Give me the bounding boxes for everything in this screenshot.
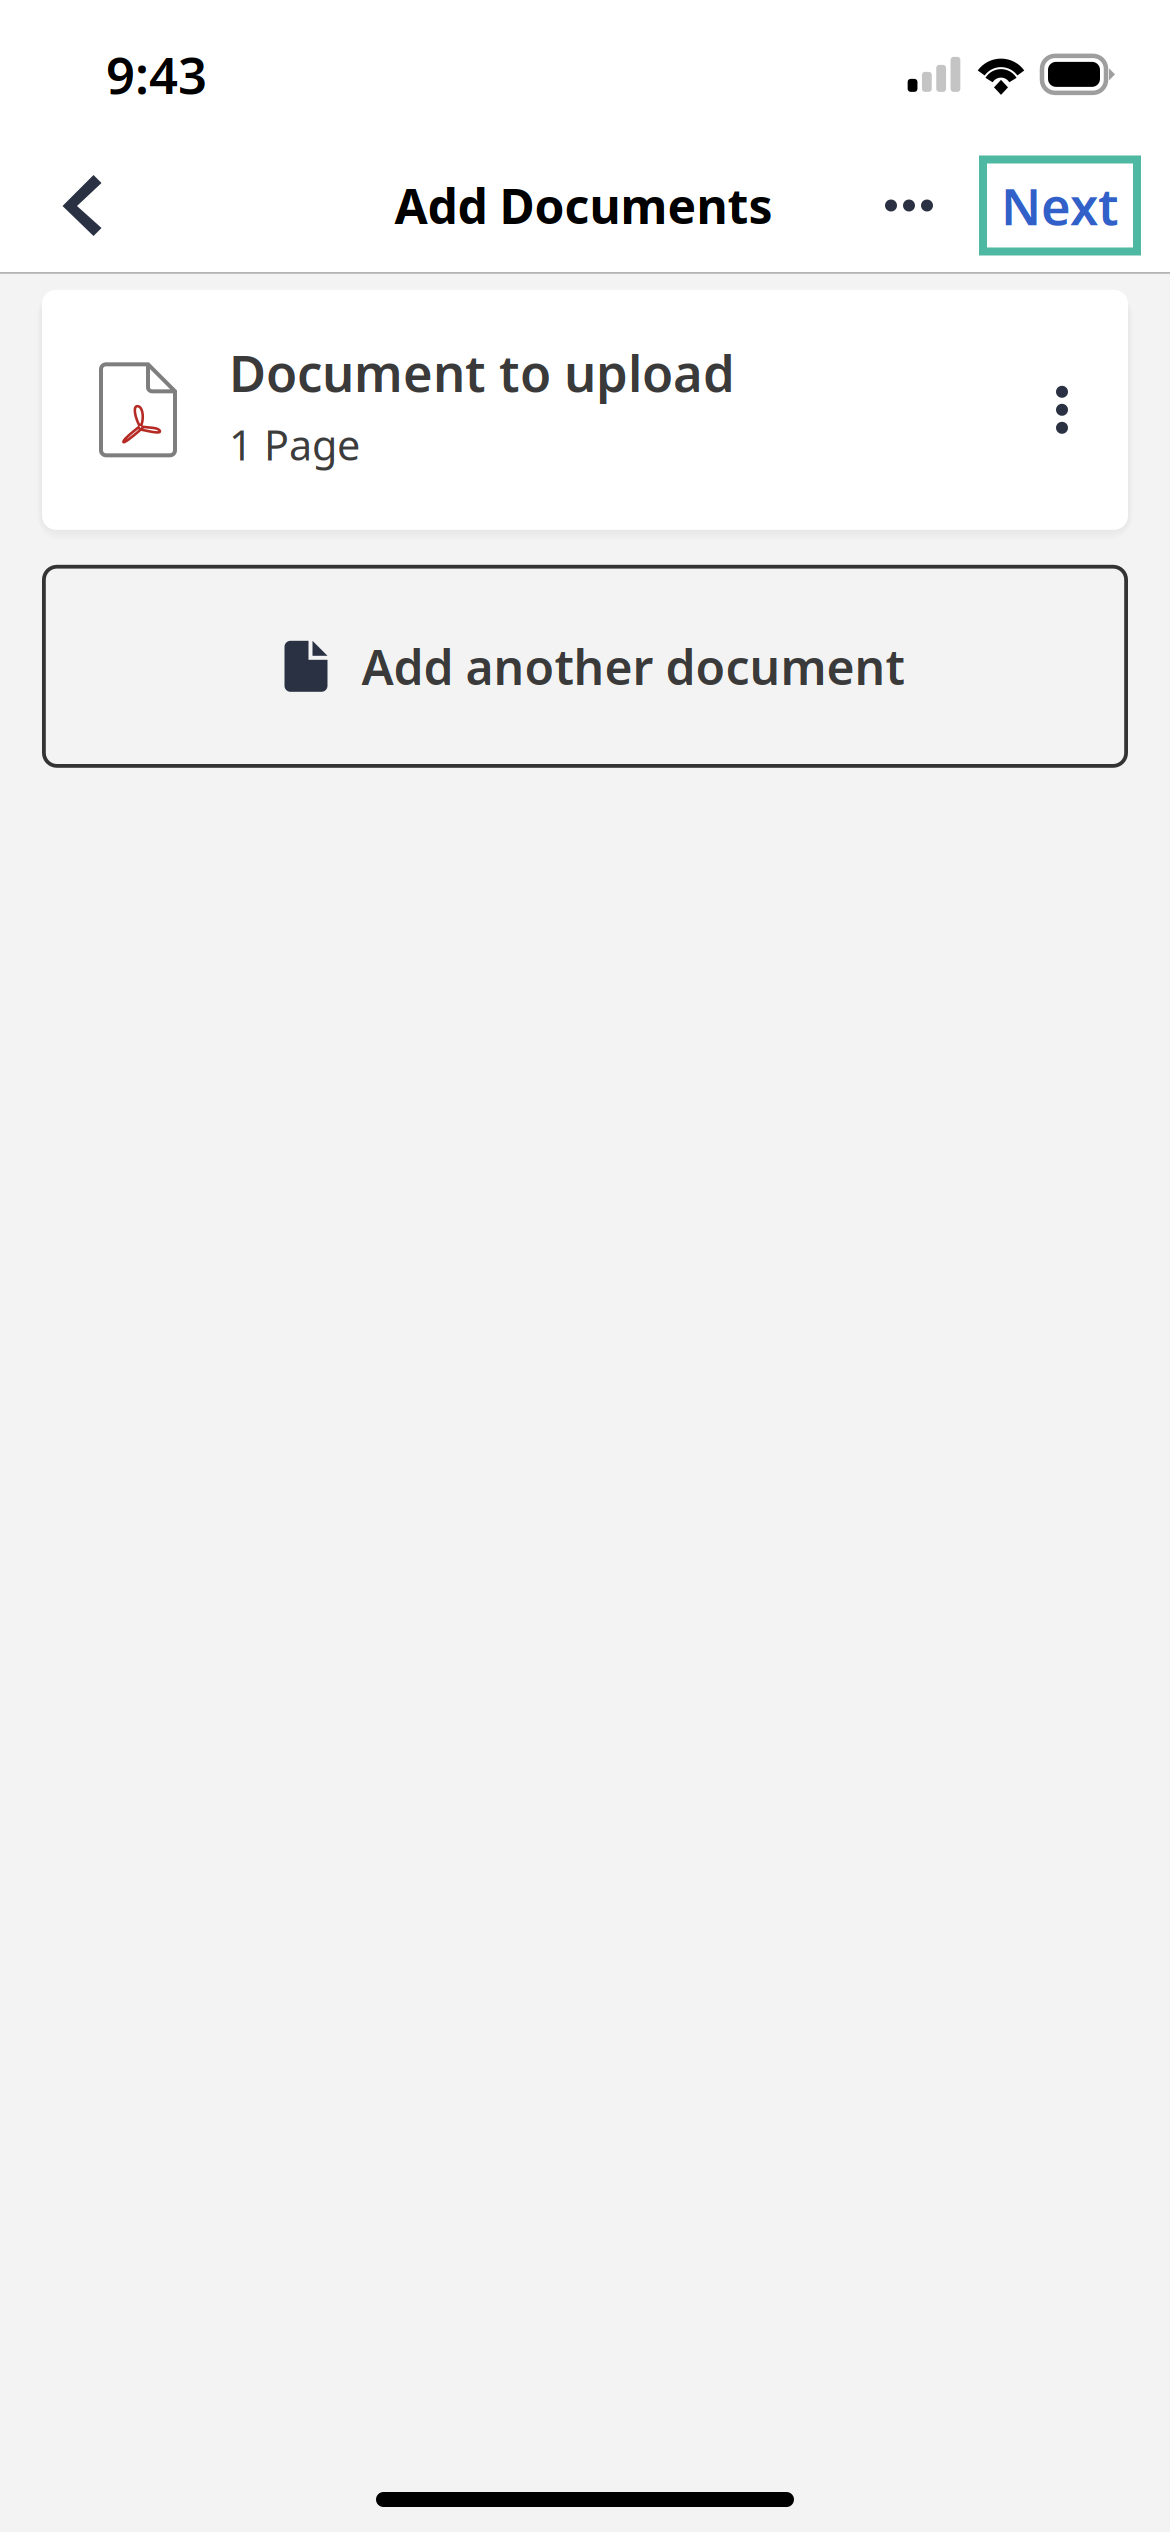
- button[interactable]: Back: [20, 145, 144, 265]
- staticText: 1 Page: [229, 417, 360, 472]
- staticText: Add Documents: [394, 174, 772, 237]
- button[interactable]: Document options: [1020, 350, 1104, 470]
- staticText: 9:43: [106, 41, 207, 108]
- staticText: Add another document: [361, 634, 904, 698]
- button[interactable]: Add another document: [42, 565, 1128, 768]
- button[interactable]: More options: [853, 145, 965, 265]
- staticText: Next: [1001, 172, 1119, 239]
- button[interactable]: Next: [983, 159, 1137, 251]
- staticText: Document to upload: [229, 339, 735, 406]
